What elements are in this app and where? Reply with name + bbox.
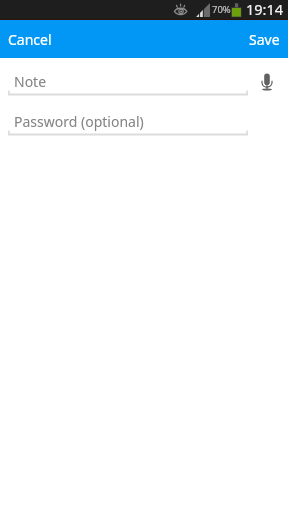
- button[interactable]: Cancel: [0, 20, 64, 58]
- button[interactable]: Note: [8, 70, 248, 96]
- staticText: 70%: [212, 3, 231, 16]
- button[interactable]: Save: [237, 20, 288, 58]
- button[interactable]: Voice input: [255, 69, 279, 95]
- staticText: Cancel: [8, 30, 52, 49]
- staticText: 19:14: [246, 0, 284, 19]
- staticText: Save: [249, 30, 280, 49]
- staticText: Note: [14, 72, 47, 91]
- button[interactable]: Password (optional): [8, 110, 248, 136]
- staticText: Password (optional): [14, 112, 144, 131]
